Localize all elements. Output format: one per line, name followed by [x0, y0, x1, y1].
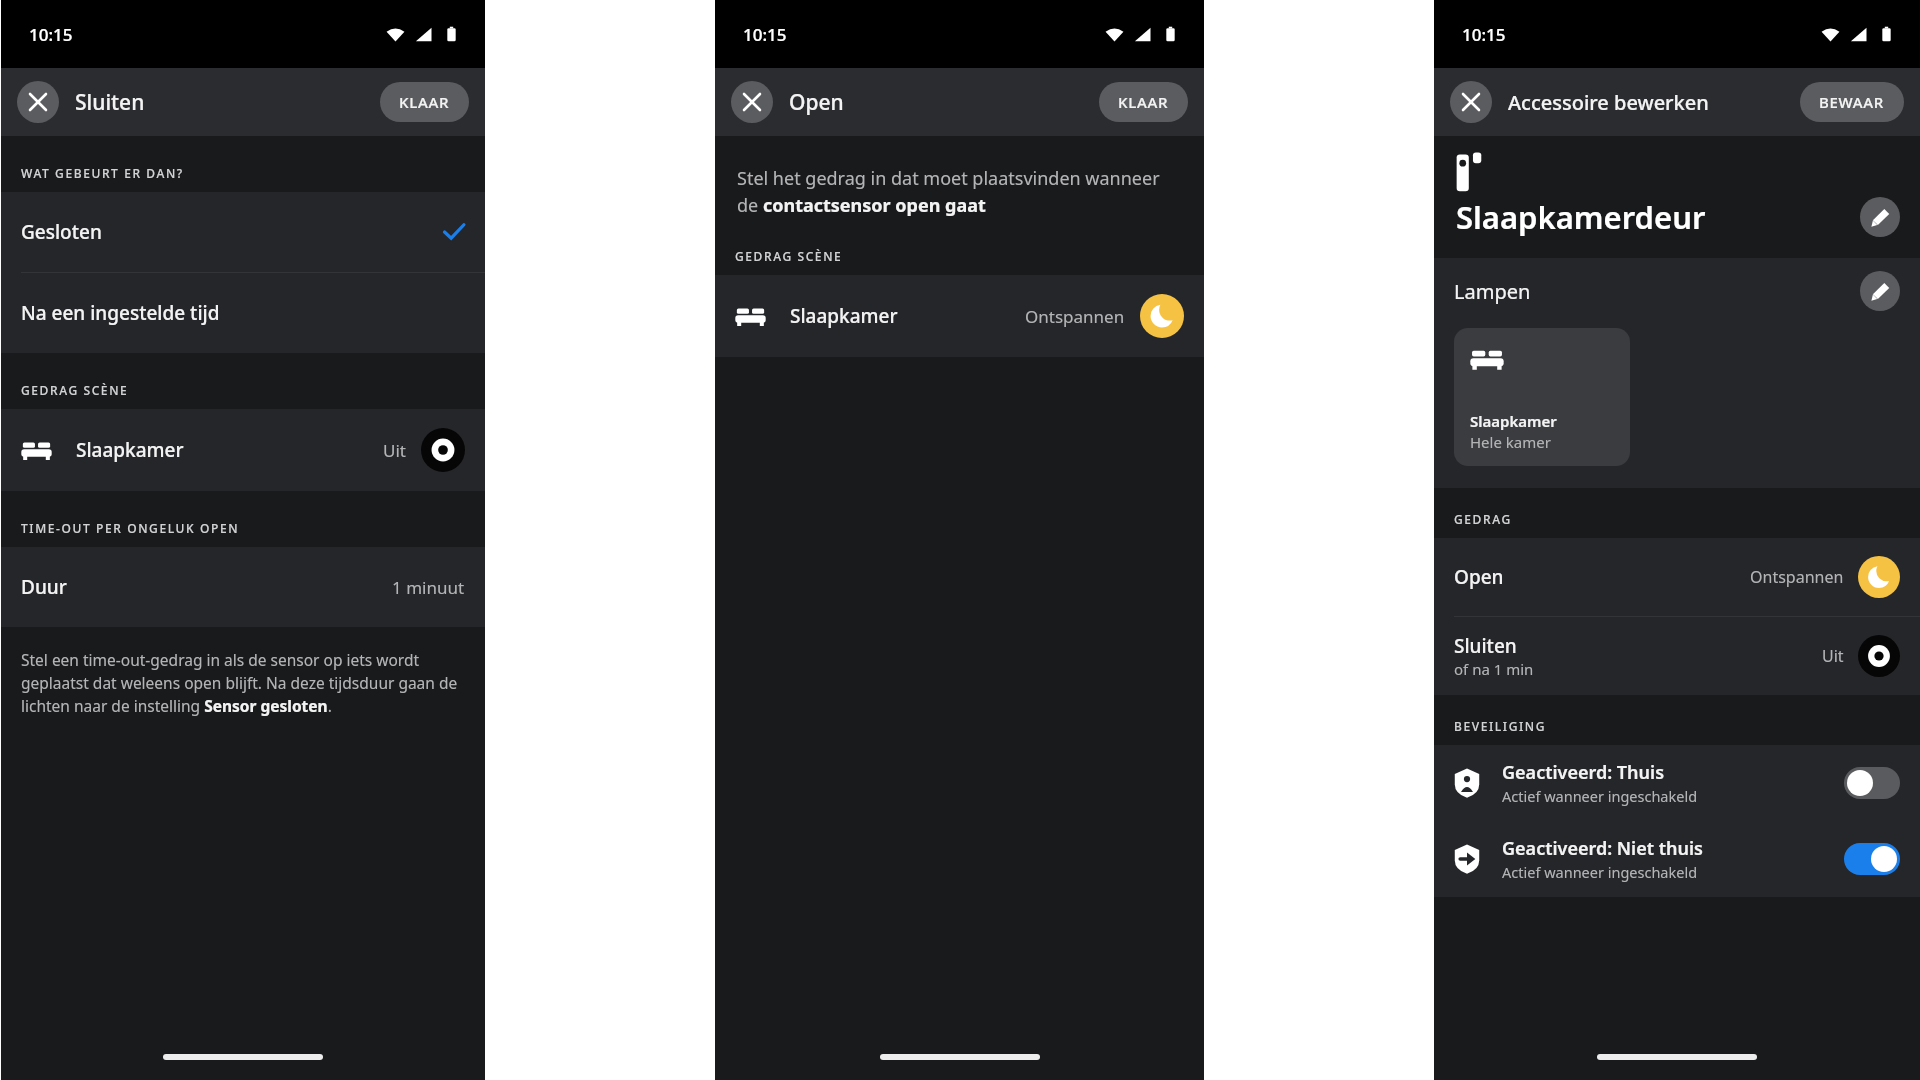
staticText: GEDRAG SCÈNE	[735, 248, 843, 264]
button[interactable]: Scène Ontspannen	[1858, 556, 1900, 598]
staticText: WAT GEBEURT ER DAN?	[21, 165, 184, 181]
staticText: Actief wanneer ingeschakeld	[1502, 786, 1698, 806]
staticText: Sluiten	[75, 88, 145, 117]
button[interactable]: Scène uit	[421, 428, 465, 472]
button[interactable]: Sluiten	[1434, 617, 1920, 695]
staticText: Na een ingestelde tijd	[21, 300, 220, 326]
button[interactable]: Ingeschakeld	[1844, 843, 1900, 875]
staticText: Stel het gedrag in dat moet plaatsvinden…	[737, 166, 1182, 217]
staticText: Slaapkamerdeur	[1456, 196, 1706, 238]
staticText: Gesloten	[21, 219, 102, 245]
staticText: Actief wanneer ingeschakeld	[1502, 862, 1698, 882]
staticText: GEDRAG	[1454, 511, 1512, 527]
staticText: Geactiveerd: Thuis	[1502, 760, 1665, 785]
button[interactable]: Bewerken	[1860, 197, 1900, 237]
staticText: Duur	[21, 574, 67, 600]
staticText: Hele kamer	[1470, 432, 1551, 452]
button[interactable]: KLAAR	[380, 82, 469, 122]
button[interactable]: Sluiten	[731, 81, 773, 123]
staticText: BEWAAR	[1819, 92, 1885, 112]
button[interactable]: Sluiten	[17, 81, 59, 123]
staticText: Stel een time-out-gedrag in als de senso…	[21, 649, 459, 717]
staticText: Sluiten	[1454, 633, 1517, 659]
button[interactable]: Slaapkamer	[1, 409, 485, 491]
staticText: Slaapkamer	[790, 303, 898, 329]
button[interactable]: Slaapkamer	[1454, 328, 1630, 466]
staticText: Geactiveerd: Niet thuis	[1502, 836, 1703, 861]
staticText: KLAAR	[399, 92, 450, 112]
staticText: Slaapkamer	[76, 437, 184, 463]
staticText: Open	[789, 88, 844, 117]
button[interactable]: Gesloten	[1, 192, 485, 272]
staticText: 10:15	[29, 23, 73, 46]
button[interactable]: KLAAR	[1099, 82, 1188, 122]
button[interactable]: Uitgeschakeld	[1844, 767, 1900, 799]
button[interactable]: Lampen	[1434, 258, 1920, 324]
staticText: GEDRAG SCÈNE	[21, 382, 129, 398]
staticText: Uit	[1822, 645, 1844, 667]
button[interactable]: Geactiveerd: Thuis	[1434, 745, 1920, 821]
button[interactable]: Open	[1434, 538, 1920, 616]
staticText: BEVEILIGING	[1454, 718, 1547, 734]
staticText: of na 1 min	[1454, 659, 1534, 679]
staticText: Ontspannen	[1025, 305, 1125, 328]
staticText: Ontspannen	[1750, 566, 1844, 588]
staticText: Accessoire bewerken	[1508, 89, 1709, 116]
button[interactable]: Sluiten	[1450, 81, 1492, 123]
staticText: KLAAR	[1118, 92, 1169, 112]
staticText: 10:15	[743, 23, 787, 46]
button[interactable]: Duur	[1, 547, 485, 627]
button[interactable]: Geactiveerd: Niet thuis	[1434, 821, 1920, 897]
staticText: Slaapkamer	[1470, 411, 1557, 431]
staticText: Lampen	[1454, 278, 1531, 305]
staticText: TIME-OUT PER ONGELUK OPEN	[21, 520, 240, 536]
button[interactable]: Bewerken	[1860, 271, 1900, 311]
button[interactable]: Scène uit	[1858, 635, 1900, 677]
button[interactable]: Na een ingestelde tijd	[1, 273, 485, 353]
staticText: 1 minuut	[392, 576, 465, 599]
button[interactable]: BEWAAR	[1800, 82, 1904, 122]
staticText: Open	[1454, 564, 1504, 590]
staticText: 10:15	[1462, 23, 1506, 46]
button[interactable]: Scène Ontspannen	[1140, 294, 1184, 338]
staticText: Uit	[383, 439, 406, 462]
button[interactable]: Slaapkamer	[715, 275, 1204, 357]
